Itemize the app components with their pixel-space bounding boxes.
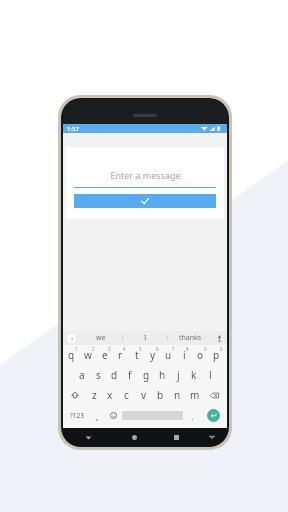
button[interactable]: Change keyboard <box>197 428 227 446</box>
button[interactable]: h <box>154 365 170 385</box>
staticText: m <box>190 388 200 402</box>
button[interactable]: k <box>186 365 202 385</box>
staticText: n <box>174 388 181 402</box>
button[interactable]: j <box>170 365 186 385</box>
staticText: . <box>191 410 194 422</box>
button[interactable]: Backspace <box>203 385 226 405</box>
staticText: e <box>102 348 108 362</box>
staticText: k <box>191 368 197 382</box>
staticText: 1:57 <box>67 125 79 133</box>
staticText: 7 <box>172 346 175 352</box>
staticText: v <box>141 388 147 402</box>
button[interactable]: More suggestions <box>63 331 79 345</box>
button[interactable]: n <box>169 385 186 405</box>
staticText: p <box>213 348 220 362</box>
staticText: h <box>159 368 166 382</box>
staticText: r <box>118 348 123 362</box>
button[interactable]: v <box>135 385 152 405</box>
button[interactable]: r <box>114 345 130 365</box>
button[interactable]: w <box>81 345 98 365</box>
staticText: 8 <box>186 346 189 352</box>
staticText: d <box>111 368 118 382</box>
button[interactable]: x <box>102 385 118 405</box>
staticText: t <box>135 348 139 362</box>
button[interactable]: b <box>152 385 169 405</box>
staticText: 5 <box>139 346 142 352</box>
button[interactable]: p <box>210 345 226 365</box>
staticText: s <box>96 368 101 382</box>
staticText: 3 <box>108 346 111 352</box>
button[interactable]: y <box>146 345 162 365</box>
staticText: f <box>128 368 132 382</box>
button[interactable]: m <box>186 385 203 405</box>
button[interactable]: Enter a message <box>74 167 216 183</box>
staticText: w <box>84 348 92 362</box>
staticText: u <box>165 348 172 362</box>
staticText: 0 <box>220 346 223 352</box>
staticText: j <box>177 368 180 382</box>
staticText: b <box>157 388 164 402</box>
staticText: 6 <box>156 346 159 352</box>
button[interactable]: s <box>90 365 106 385</box>
button[interactable]: , <box>89 405 105 426</box>
button[interactable]: Emoji <box>105 405 121 426</box>
button[interactable]: Shift <box>64 385 86 405</box>
staticText: o <box>197 348 204 362</box>
button[interactable]: we <box>79 331 122 345</box>
button[interactable]: o <box>194 345 210 365</box>
button[interactable]: e <box>98 345 114 365</box>
staticText: 4 <box>123 346 126 352</box>
button[interactable]: Recent apps <box>156 428 197 446</box>
staticText: thanks <box>179 333 202 343</box>
button[interactable]: t <box>130 345 146 365</box>
staticText: I <box>144 333 147 343</box>
staticText: 2 <box>92 346 95 352</box>
staticText: , <box>96 410 99 422</box>
button[interactable]: . <box>184 405 200 426</box>
staticText: a <box>79 368 85 382</box>
button[interactable]: f <box>122 365 138 385</box>
button[interactable]: Hide keyboard <box>63 428 113 446</box>
staticText: x <box>107 388 113 402</box>
staticText: l <box>209 368 212 382</box>
staticText: c <box>124 388 129 402</box>
button[interactable]: z <box>86 385 102 405</box>
button[interactable]: I <box>123 331 167 345</box>
button[interactable]: g <box>138 365 154 385</box>
staticText: 9 <box>204 346 207 352</box>
staticText: q <box>68 348 75 362</box>
button[interactable]: Home <box>113 428 156 446</box>
button[interactable]: l <box>202 365 218 385</box>
button[interactable]: Send message <box>74 194 216 208</box>
staticText: we <box>96 333 106 343</box>
staticText: z <box>92 388 97 402</box>
button[interactable]: u <box>162 345 178 365</box>
button[interactable]: Enter <box>200 405 226 426</box>
staticText: ?123 <box>70 411 84 420</box>
button[interactable]: q <box>64 345 81 365</box>
button[interactable]: Voice input <box>212 331 227 345</box>
button[interactable]: a <box>73 365 90 385</box>
button[interactable]: ?123 <box>64 405 89 426</box>
staticText: 1 <box>75 346 78 352</box>
staticText: Enter a message <box>110 169 181 181</box>
staticText: y <box>150 348 156 362</box>
staticText: g <box>143 368 150 382</box>
staticText: i <box>183 348 186 362</box>
button[interactable]: thanks <box>168 331 212 345</box>
button[interactable]: c <box>118 385 135 405</box>
button[interactable]: d <box>106 365 122 385</box>
button[interactable]: i <box>178 345 194 365</box>
